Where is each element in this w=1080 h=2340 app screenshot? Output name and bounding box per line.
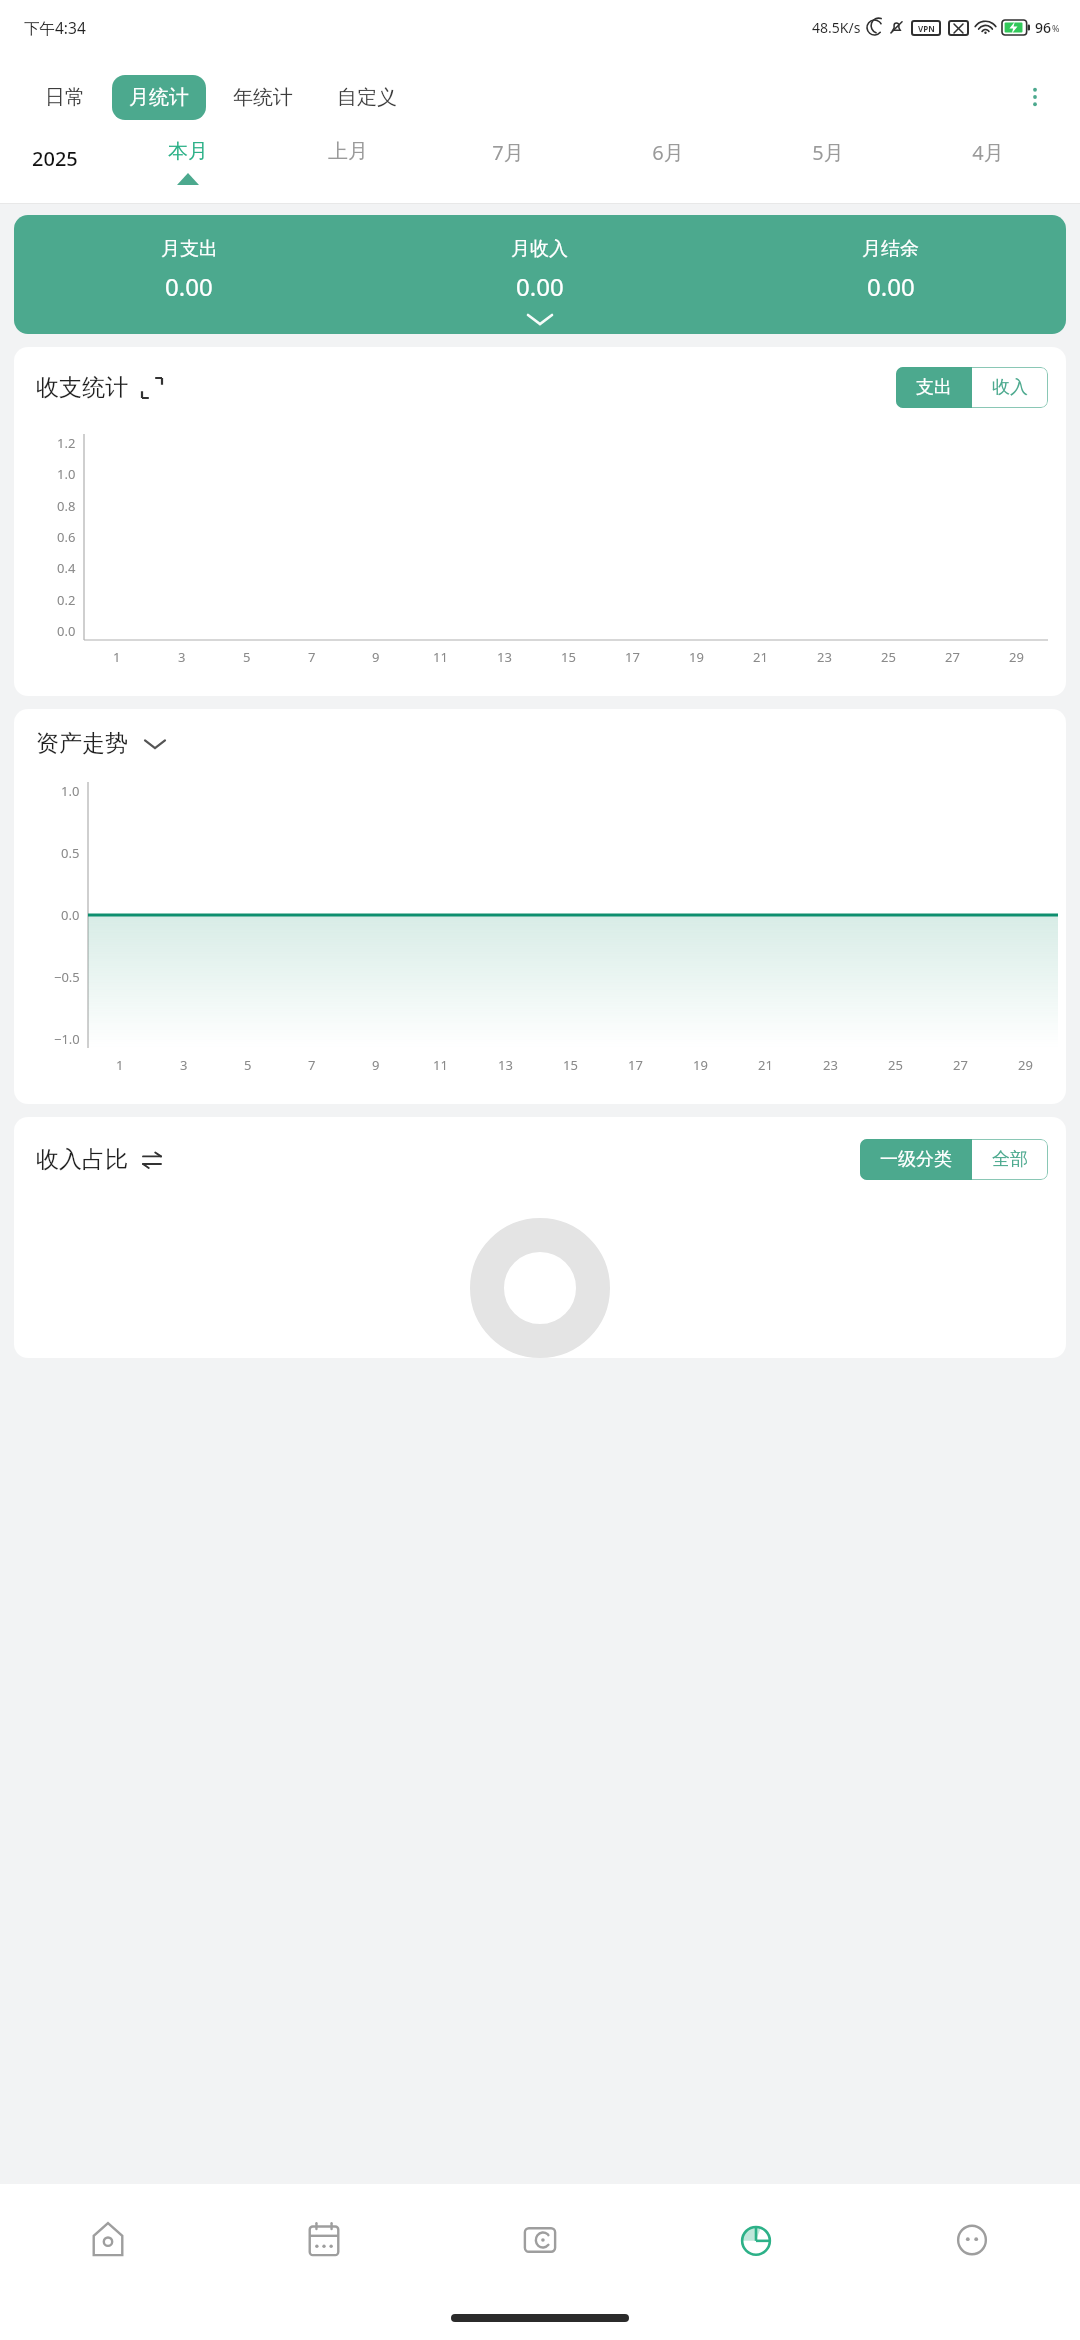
button[interactable]: 上月 <box>268 139 428 185</box>
staticText: 本月 <box>168 139 208 164</box>
staticText: 19 <box>689 648 704 666</box>
button[interactable]: More options <box>1012 74 1058 120</box>
staticText: 月收入 <box>511 237 568 261</box>
staticText: 上月 <box>328 139 368 164</box>
staticText: 月结余 <box>862 237 919 261</box>
staticText: −0.5 <box>54 968 80 986</box>
button[interactable]: 一级分类 <box>860 1139 972 1180</box>
button[interactable]: 月支出 <box>14 215 1066 334</box>
staticText: 17 <box>625 648 640 666</box>
staticText: 日常 <box>45 85 85 110</box>
staticText: 3 <box>180 1056 188 1074</box>
staticText: 21 <box>758 1056 773 1074</box>
staticText: 19 <box>693 1056 708 1074</box>
staticText: 23 <box>823 1056 838 1074</box>
staticText: 96 <box>1035 18 1052 37</box>
staticText: 0.0 <box>57 622 76 640</box>
staticText: 全部 <box>992 1148 1028 1171</box>
staticText: 下午4:34 <box>24 17 86 38</box>
staticText: 11 <box>433 648 448 666</box>
staticText: % <box>1052 22 1060 34</box>
staticText: 1 <box>113 648 121 666</box>
staticText: 月统计 <box>129 85 189 110</box>
button[interactable]: 6月 <box>588 139 748 187</box>
staticText: 4月 <box>972 139 1004 166</box>
staticText: 0.6 <box>57 528 76 546</box>
staticText: 支出 <box>916 376 952 399</box>
staticText: 月支出 <box>161 237 218 261</box>
staticText: 0.8 <box>57 497 76 515</box>
staticText: 0.0 <box>61 906 80 924</box>
button[interactable]: More <box>864 2184 1080 2296</box>
staticText: 收支统计 <box>36 373 128 402</box>
staticText: 17 <box>628 1056 643 1074</box>
staticText: 0.00 <box>165 270 213 303</box>
staticText: 自定义 <box>337 85 397 110</box>
staticText: 7 <box>308 1056 316 1074</box>
button[interactable]: Expand chart <box>139 375 165 401</box>
button[interactable]: Home <box>0 2184 216 2296</box>
button[interactable]: 收入 <box>972 367 1048 408</box>
staticText: 15 <box>561 648 576 666</box>
staticText: VPN <box>918 23 935 34</box>
staticText: 0.4 <box>57 559 76 577</box>
staticText: 0.00 <box>867 270 915 303</box>
staticText: 资产走势 <box>36 729 128 758</box>
staticText: 2025 <box>32 145 78 172</box>
button[interactable]: 日常 <box>28 75 102 120</box>
staticText: −1.0 <box>54 1030 80 1048</box>
staticText: 1.2 <box>57 434 76 452</box>
button[interactable]: 支出 <box>896 367 972 408</box>
staticText: 11 <box>433 1056 448 1074</box>
staticText: 13 <box>497 648 512 666</box>
staticText: 1.0 <box>61 782 80 800</box>
staticText: 27 <box>945 648 960 666</box>
staticText: 5 <box>244 1056 252 1074</box>
staticText: 48.5K/s <box>812 18 861 37</box>
button[interactable]: 2025 <box>24 139 86 178</box>
staticText: 21 <box>753 648 768 666</box>
staticText: 1 <box>116 1056 124 1074</box>
button[interactable]: 年统计 <box>216 75 310 120</box>
staticText: 年统计 <box>233 85 293 110</box>
button[interactable]: 7月 <box>428 139 588 187</box>
button[interactable]: Select asset <box>142 731 168 757</box>
staticText: 0.5 <box>61 844 80 862</box>
staticText: 1.0 <box>57 465 76 483</box>
staticText: 29 <box>1009 648 1024 666</box>
staticText: 收入 <box>992 376 1028 399</box>
staticText: 25 <box>881 648 896 666</box>
staticText: 27 <box>953 1056 968 1074</box>
staticText: 13 <box>498 1056 513 1074</box>
staticText: 收入占比 <box>36 1145 128 1174</box>
staticText: 25 <box>888 1056 903 1074</box>
staticText: 9 <box>372 648 380 666</box>
staticText: 0.00 <box>516 270 564 303</box>
button[interactable]: 自定义 <box>320 75 414 120</box>
staticText: 3 <box>178 648 186 666</box>
staticText: 6月 <box>652 139 684 166</box>
button[interactable]: Wallet <box>432 2184 648 2296</box>
staticText: 5 <box>243 648 251 666</box>
staticText: 7月 <box>492 139 524 166</box>
button[interactable]: Statistics <box>648 2184 864 2296</box>
staticText: 15 <box>563 1056 578 1074</box>
staticText: 0.2 <box>57 591 76 609</box>
button[interactable]: Switch income expense <box>139 1147 165 1173</box>
staticText: 5月 <box>812 139 844 166</box>
button[interactable]: 本月 <box>108 139 268 185</box>
staticText: 29 <box>1018 1056 1033 1074</box>
staticText: 一级分类 <box>880 1148 952 1171</box>
button[interactable]: 4月 <box>908 139 1068 187</box>
staticText: 23 <box>817 648 832 666</box>
button[interactable]: Calendar <box>216 2184 432 2296</box>
button[interactable]: 月统计 <box>112 75 206 120</box>
button[interactable]: 全部 <box>972 1139 1048 1180</box>
staticText: 7 <box>308 648 316 666</box>
button[interactable]: 5月 <box>748 139 908 187</box>
staticText: 9 <box>372 1056 380 1074</box>
